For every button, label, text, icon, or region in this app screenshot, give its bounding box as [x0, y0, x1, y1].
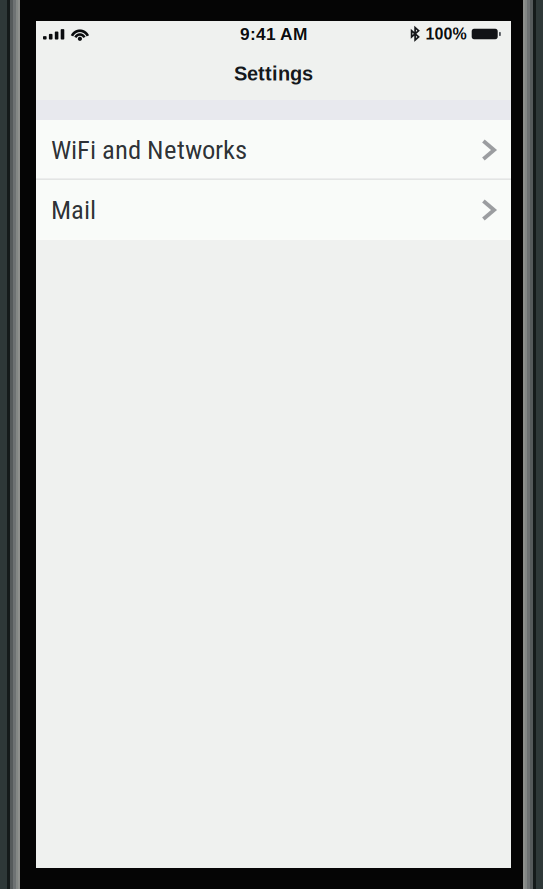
staticText: 100%: [425, 25, 466, 43]
button[interactable]: Mail: [36, 180, 511, 240]
staticText: 9:41 AM: [240, 24, 307, 44]
staticText: WiFi and Networks: [51, 134, 247, 166]
button[interactable]: WiFi and Networks: [36, 120, 511, 180]
staticText: Settings: [234, 62, 313, 85]
staticText: Mail: [51, 194, 96, 226]
